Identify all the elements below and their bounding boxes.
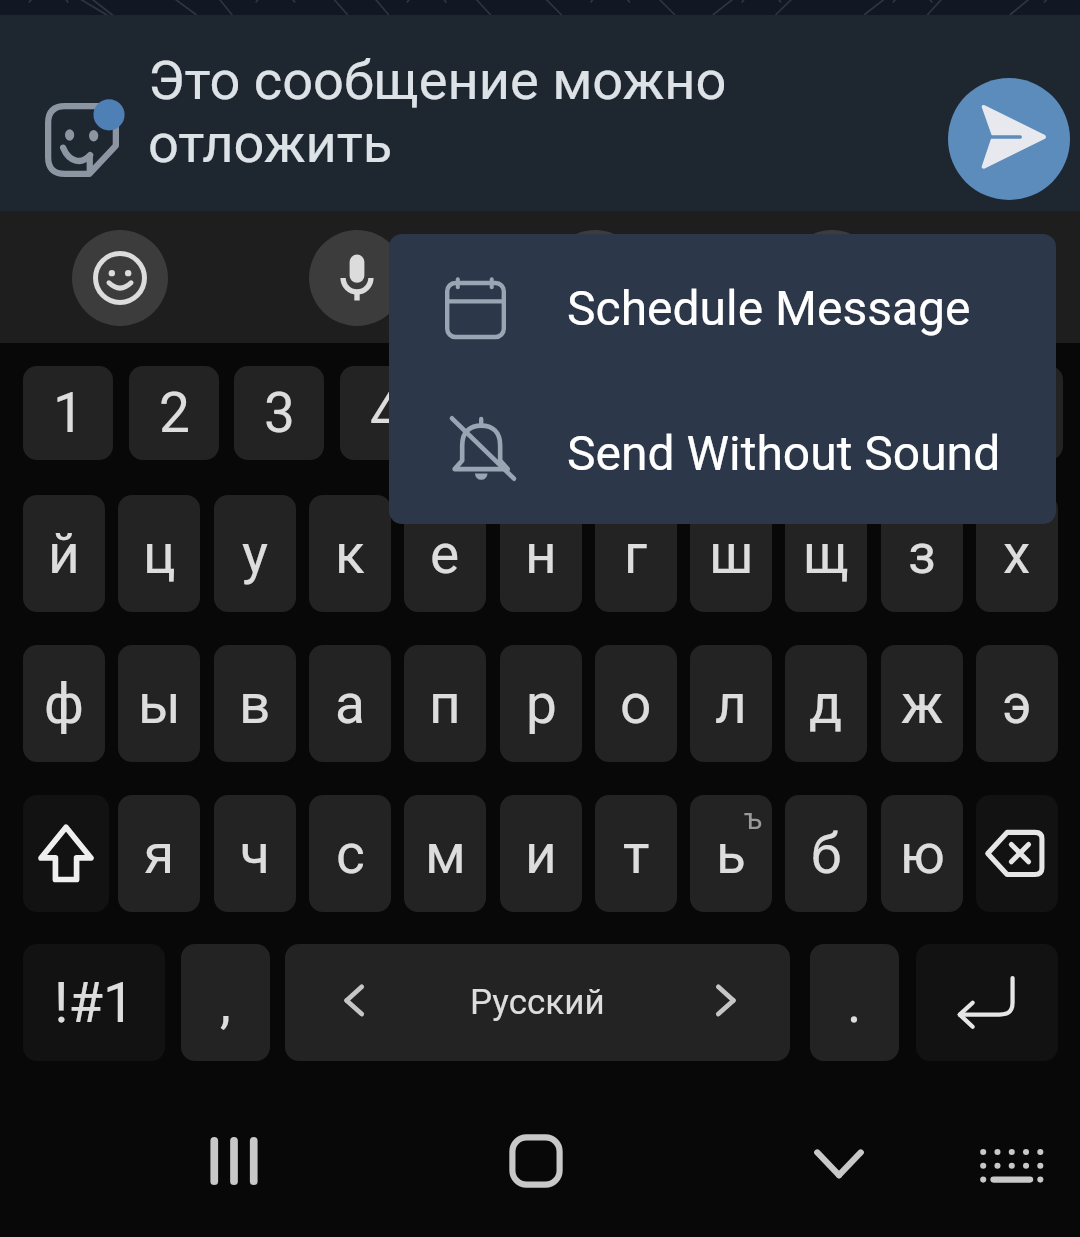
button[interactable]: в xyxy=(214,645,296,762)
button[interactable]: т xyxy=(595,795,677,912)
button[interactable]: о xyxy=(595,645,677,762)
button[interactable]: ц xyxy=(118,495,200,612)
staticText: о xyxy=(620,672,652,736)
staticText: б xyxy=(811,822,842,886)
button[interactable]: Enter xyxy=(916,944,1058,1061)
button[interactable]: Change keyboard xyxy=(941,1098,1080,1237)
button[interactable]: ч xyxy=(214,795,296,912)
button[interactable]: Home xyxy=(466,1098,606,1237)
staticText: 4 xyxy=(370,381,401,445)
staticText: ч xyxy=(240,822,270,886)
staticText: щ xyxy=(803,522,849,586)
button[interactable]: е xyxy=(404,495,486,612)
button[interactable]: 8 xyxy=(762,366,852,460)
staticText: 2 xyxy=(159,381,190,445)
staticText: г xyxy=(624,522,648,586)
button[interactable]: 7 xyxy=(656,366,746,460)
button[interactable]: р xyxy=(500,645,582,762)
staticText: ш xyxy=(709,522,754,586)
button[interactable]: Send Without Sound xyxy=(389,379,1056,524)
button[interactable]: Backspace xyxy=(976,795,1058,912)
button[interactable]: а xyxy=(309,645,391,762)
button[interactable]: Voice xyxy=(309,230,405,326)
button[interactable]: 9 xyxy=(867,366,957,460)
button[interactable]: 6 xyxy=(551,366,641,460)
staticText: п xyxy=(429,672,461,736)
button[interactable]: щ xyxy=(785,495,867,612)
button[interactable]: ш xyxy=(690,495,772,612)
button[interactable]: 1 xyxy=(23,366,113,460)
button[interactable]: , xyxy=(181,944,270,1061)
button[interactable]: Recent apps xyxy=(164,1098,304,1237)
staticText: в xyxy=(239,672,271,736)
button[interactable]: . xyxy=(810,944,899,1061)
staticText: й xyxy=(48,522,80,586)
staticText: с xyxy=(336,822,365,886)
staticText: ы xyxy=(138,672,181,736)
button[interactable]: с xyxy=(309,795,391,912)
button[interactable]: 3 xyxy=(234,366,324,460)
button[interactable]: я xyxy=(118,795,200,912)
button[interactable]: г xyxy=(595,495,677,612)
staticText: х xyxy=(1003,522,1031,586)
button[interactable]: б xyxy=(785,795,867,912)
staticText: 6 xyxy=(581,381,612,445)
button[interactable]: ф xyxy=(23,645,105,762)
button[interactable]: Send xyxy=(948,78,1070,200)
button[interactable]: 5 xyxy=(445,366,535,460)
button[interactable]: ж xyxy=(881,645,963,762)
staticText: 3 xyxy=(264,381,295,445)
button[interactable]: !#1 xyxy=(23,944,165,1061)
staticText: у xyxy=(242,522,269,586)
staticText: ъ xyxy=(744,802,762,836)
staticText: м xyxy=(425,822,466,886)
staticText: ц xyxy=(143,522,176,586)
staticText: 1 xyxy=(53,381,84,445)
button[interactable]: ы xyxy=(118,645,200,762)
button[interactable]: п xyxy=(404,645,486,762)
button[interactable]: 4 xyxy=(340,366,430,460)
button[interactable]: м xyxy=(404,795,486,912)
staticText: Русский xyxy=(470,982,605,1023)
staticText: ю xyxy=(900,822,945,886)
button[interactable]: Attach xyxy=(547,230,643,326)
staticText: 5 xyxy=(475,381,506,445)
button[interactable]: Emoji xyxy=(72,230,168,326)
staticText: к xyxy=(335,522,365,586)
button[interactable]: х xyxy=(976,495,1058,612)
button[interactable]: ю xyxy=(881,795,963,912)
button[interactable]: Shift xyxy=(23,795,109,912)
button[interactable]: з xyxy=(881,495,963,612)
button[interactable]: й xyxy=(23,495,105,612)
button[interactable]: к xyxy=(309,495,391,612)
button[interactable]: More xyxy=(784,230,880,326)
staticText: Это сообщение можно отложить xyxy=(148,49,727,175)
staticText: т xyxy=(623,822,650,886)
staticText: !#1 xyxy=(54,970,135,1036)
button[interactable]: н xyxy=(500,495,582,612)
button[interactable]: Hide keyboard xyxy=(769,1098,909,1237)
button[interactable]: и xyxy=(500,795,582,912)
staticText: д xyxy=(809,672,843,736)
staticText: э xyxy=(1002,672,1032,736)
staticText: ф xyxy=(44,672,84,736)
staticText: ж xyxy=(901,672,944,736)
staticText: Schedule Message xyxy=(567,280,971,336)
staticText: 7 xyxy=(686,381,717,445)
staticText: н xyxy=(525,522,557,586)
staticText: Send Without Sound xyxy=(567,425,1001,481)
button[interactable]: 0 xyxy=(973,366,1063,460)
staticText: я xyxy=(144,822,175,886)
button[interactable]: Schedule Message xyxy=(389,234,1056,379)
button[interactable]: э xyxy=(976,645,1058,762)
staticText: а xyxy=(335,672,365,736)
button[interactable]: л xyxy=(690,645,772,762)
button[interactable]: Русский xyxy=(285,944,790,1061)
button[interactable]: Stickers xyxy=(45,103,119,177)
button[interactable]: д xyxy=(785,645,867,762)
button[interactable]: у xyxy=(214,495,296,612)
button[interactable]: ь xyxy=(690,795,772,912)
button[interactable]: 2 xyxy=(129,366,219,460)
staticText: е xyxy=(430,522,460,586)
